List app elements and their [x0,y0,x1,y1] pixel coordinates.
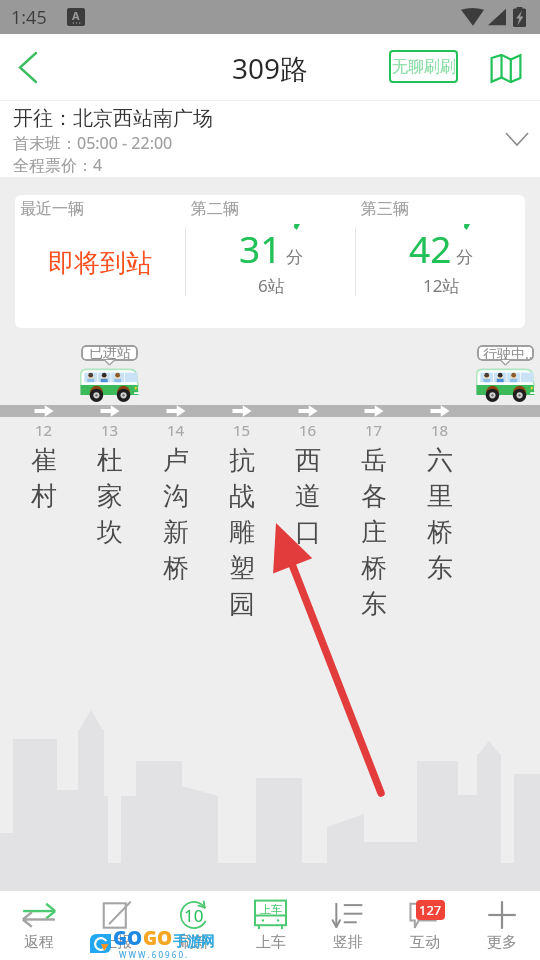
staticText: 刷新 [179,933,209,952]
staticText: 战 [229,480,255,513]
staticText: 10 [184,904,204,927]
button[interactable]: 第二辆 [186,195,355,328]
staticText: 手游网 [173,933,215,951]
button[interactable]: 返程 [0,891,78,960]
staticText: 即将到站 [48,247,152,280]
button[interactable]: Back [0,34,56,101]
staticText: 分 [456,247,473,268]
staticText: 第二辆 [191,199,239,219]
staticText: 庄 [361,516,387,549]
button[interactable]: Map [484,46,528,90]
button[interactable]: 16 [275,422,341,550]
staticText: 17 [365,420,383,440]
button[interactable]: 18 [407,422,473,586]
staticText: 31 [239,223,282,273]
button[interactable]: 127 [386,891,463,960]
staticText: 抗 [229,444,255,477]
button[interactable]: 上车 [232,891,309,960]
button[interactable]: 17 [341,422,407,622]
staticText: 返程 [24,933,54,952]
staticText: 309路 [232,49,309,87]
button[interactable]: 竖排 [309,891,386,960]
staticText: 14 [167,420,185,440]
staticText: 无聊刷刷 [392,57,456,77]
staticText: GO [143,925,173,951]
staticText: 42 [409,223,452,273]
button[interactable]: 更多 [463,891,540,960]
staticText: 岳 [361,444,387,477]
staticText: 崔 [31,444,57,477]
button[interactable]: 14 [143,422,209,586]
button[interactable]: Expand details [494,115,540,163]
button[interactable]: 10 [155,891,232,960]
staticText: 沟 [163,480,189,513]
staticText: 1:45 [11,5,47,30]
staticText: 分 [286,247,303,268]
staticText: A [72,8,80,23]
staticText: 竖排 [333,933,363,952]
staticText: 127 [419,901,442,919]
staticText: 杜 [97,444,123,477]
staticText: 东 [427,552,453,585]
staticText: 上车 [260,902,282,916]
button[interactable]: 上报 [78,891,155,960]
staticText: 15 [233,420,251,440]
staticText: 园 [229,588,255,621]
staticText: 新 [163,516,189,549]
staticText: 第三辆 [361,199,409,219]
staticText: 东 [361,588,387,621]
staticText: 18 [431,420,449,440]
staticText: 桥 [427,516,453,549]
button[interactable]: 13 [77,422,143,550]
staticText: 里 [427,480,453,513]
button[interactable]: 12 [11,422,77,514]
staticText: 全程票价：4 [13,154,103,176]
staticText: 卢 [163,444,189,477]
staticText: 12 [35,420,53,440]
staticText: 互动 [410,933,440,952]
staticText: 口 [295,516,321,549]
staticText: 上车 [256,933,286,952]
staticText: 上报 [102,933,132,952]
button[interactable]: 第三辆 [356,195,525,328]
staticText: 13 [101,420,119,440]
staticText: GO [113,925,143,951]
staticText: 道 [295,480,321,513]
staticText: 六 [427,444,453,477]
staticText: 雕 [229,516,255,549]
staticText: 村 [31,480,57,513]
staticText: 12站 [423,274,460,297]
staticText: 已进站 [89,345,131,360]
staticText: 西 [295,444,321,477]
staticText: 最近一辆 [20,199,84,219]
staticText: 更多 [487,933,517,952]
staticText: 塑 [229,552,255,585]
button[interactable]: 15 [209,422,275,622]
staticText: 16 [299,420,317,440]
staticText: 开往：北京西站南广场 [13,106,213,131]
staticText: 桥 [163,552,189,585]
staticText: 6站 [258,274,285,297]
staticText: 首末班：05:00 - 22:00 [13,132,173,154]
staticText: W W W . 6 0 9 6 0 . [119,949,188,960]
staticText: 行驶中... [483,345,534,360]
button[interactable]: 最近一辆 [15,195,185,328]
staticText: 各 [361,480,387,513]
staticText: 坎 [97,516,123,549]
staticText: 家 [97,480,123,513]
button[interactable]: 无聊刷刷 [389,50,458,83]
staticText: 桥 [361,552,387,585]
